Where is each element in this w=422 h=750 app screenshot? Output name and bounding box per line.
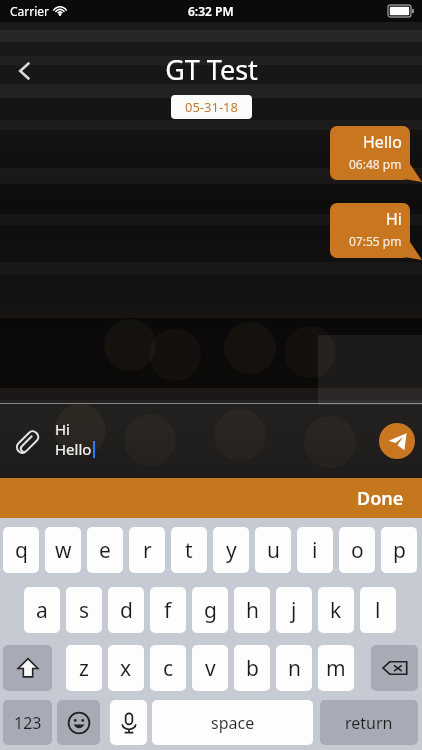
staticText: a bbox=[36, 596, 48, 625]
button[interactable]: Back bbox=[6, 52, 44, 90]
staticText: i bbox=[312, 536, 318, 565]
staticText: h bbox=[246, 596, 259, 625]
staticText: space bbox=[211, 712, 255, 734]
button[interactable]: z bbox=[66, 645, 102, 691]
button[interactable]: l bbox=[360, 587, 396, 633]
button[interactable]: n bbox=[276, 645, 312, 691]
staticText: Hi bbox=[386, 208, 402, 230]
button[interactable]: q bbox=[3, 527, 39, 573]
staticText: GT Test bbox=[165, 51, 258, 88]
staticText: w bbox=[55, 536, 72, 565]
button[interactable]: Shift bbox=[3, 645, 52, 691]
staticText: g bbox=[204, 596, 217, 625]
staticText: Carrier bbox=[10, 3, 50, 19]
staticText: 07:55 pm bbox=[349, 233, 402, 249]
button[interactable]: f bbox=[150, 587, 186, 633]
staticText: t bbox=[185, 536, 193, 565]
staticText: p bbox=[393, 536, 406, 565]
button[interactable]: Hello bbox=[330, 126, 410, 180]
button[interactable]: d bbox=[108, 587, 144, 633]
staticText: 05-31-18 bbox=[185, 98, 238, 116]
staticText: s bbox=[79, 596, 90, 625]
staticText: Done bbox=[357, 486, 404, 510]
staticText: k bbox=[330, 596, 342, 625]
button[interactable]: e bbox=[87, 527, 123, 573]
button[interactable]: Hi bbox=[330, 203, 410, 258]
button[interactable]: b bbox=[234, 645, 270, 691]
button[interactable]: u bbox=[255, 527, 291, 573]
staticText: e bbox=[99, 536, 111, 565]
button[interactable]: Done bbox=[339, 478, 422, 518]
staticText: x bbox=[120, 654, 132, 683]
button[interactable]: 05-31-18 bbox=[171, 95, 252, 119]
button[interactable]: j bbox=[276, 587, 312, 633]
staticText: q bbox=[15, 536, 28, 565]
button[interactable]: Backspace bbox=[371, 645, 418, 691]
button[interactable]: Emoji bbox=[57, 700, 100, 745]
staticText: f bbox=[164, 596, 172, 625]
staticText: z bbox=[79, 654, 89, 683]
staticText: 123 bbox=[14, 712, 42, 734]
button[interactable]: space bbox=[152, 700, 313, 745]
staticText: l bbox=[375, 596, 381, 625]
staticText: v bbox=[205, 654, 216, 683]
button[interactable]: v bbox=[192, 645, 228, 691]
button[interactable]: x bbox=[108, 645, 144, 691]
staticText: r bbox=[143, 536, 152, 565]
button[interactable]: o bbox=[339, 527, 375, 573]
staticText: Hello bbox=[363, 131, 402, 153]
staticText: o bbox=[351, 536, 364, 565]
button[interactable]: return bbox=[320, 700, 418, 745]
staticText: Hi bbox=[55, 419, 70, 439]
button[interactable]: Attach bbox=[6, 421, 46, 461]
button[interactable]: r bbox=[129, 527, 165, 573]
staticText: Hello bbox=[55, 439, 92, 459]
staticText: c bbox=[163, 654, 174, 683]
button[interactable]: m bbox=[318, 645, 354, 691]
button[interactable]: c bbox=[150, 645, 186, 691]
staticText: return bbox=[345, 712, 393, 734]
button[interactable]: i bbox=[297, 527, 333, 573]
staticText: u bbox=[267, 536, 280, 565]
staticText: d bbox=[120, 596, 133, 625]
staticText: m bbox=[326, 654, 346, 683]
button[interactable]: w bbox=[45, 527, 81, 573]
button[interactable]: y bbox=[213, 527, 249, 573]
staticText: 6:32 PM bbox=[188, 3, 234, 19]
button[interactable]: a bbox=[24, 587, 60, 633]
staticText: y bbox=[226, 536, 237, 565]
button[interactable]: h bbox=[234, 587, 270, 633]
staticText: n bbox=[288, 654, 301, 683]
button[interactable]: s bbox=[66, 587, 102, 633]
button[interactable]: g bbox=[192, 587, 228, 633]
staticText: j bbox=[291, 596, 297, 625]
staticText: b bbox=[246, 654, 259, 683]
button[interactable]: 123 bbox=[3, 700, 52, 745]
button[interactable]: p bbox=[381, 527, 417, 573]
button[interactable]: k bbox=[318, 587, 354, 633]
button[interactable]: Dictate bbox=[110, 700, 147, 745]
button[interactable]: t bbox=[171, 527, 207, 573]
staticText: 06:48 pm bbox=[349, 156, 402, 172]
button[interactable]: Send bbox=[379, 423, 415, 459]
